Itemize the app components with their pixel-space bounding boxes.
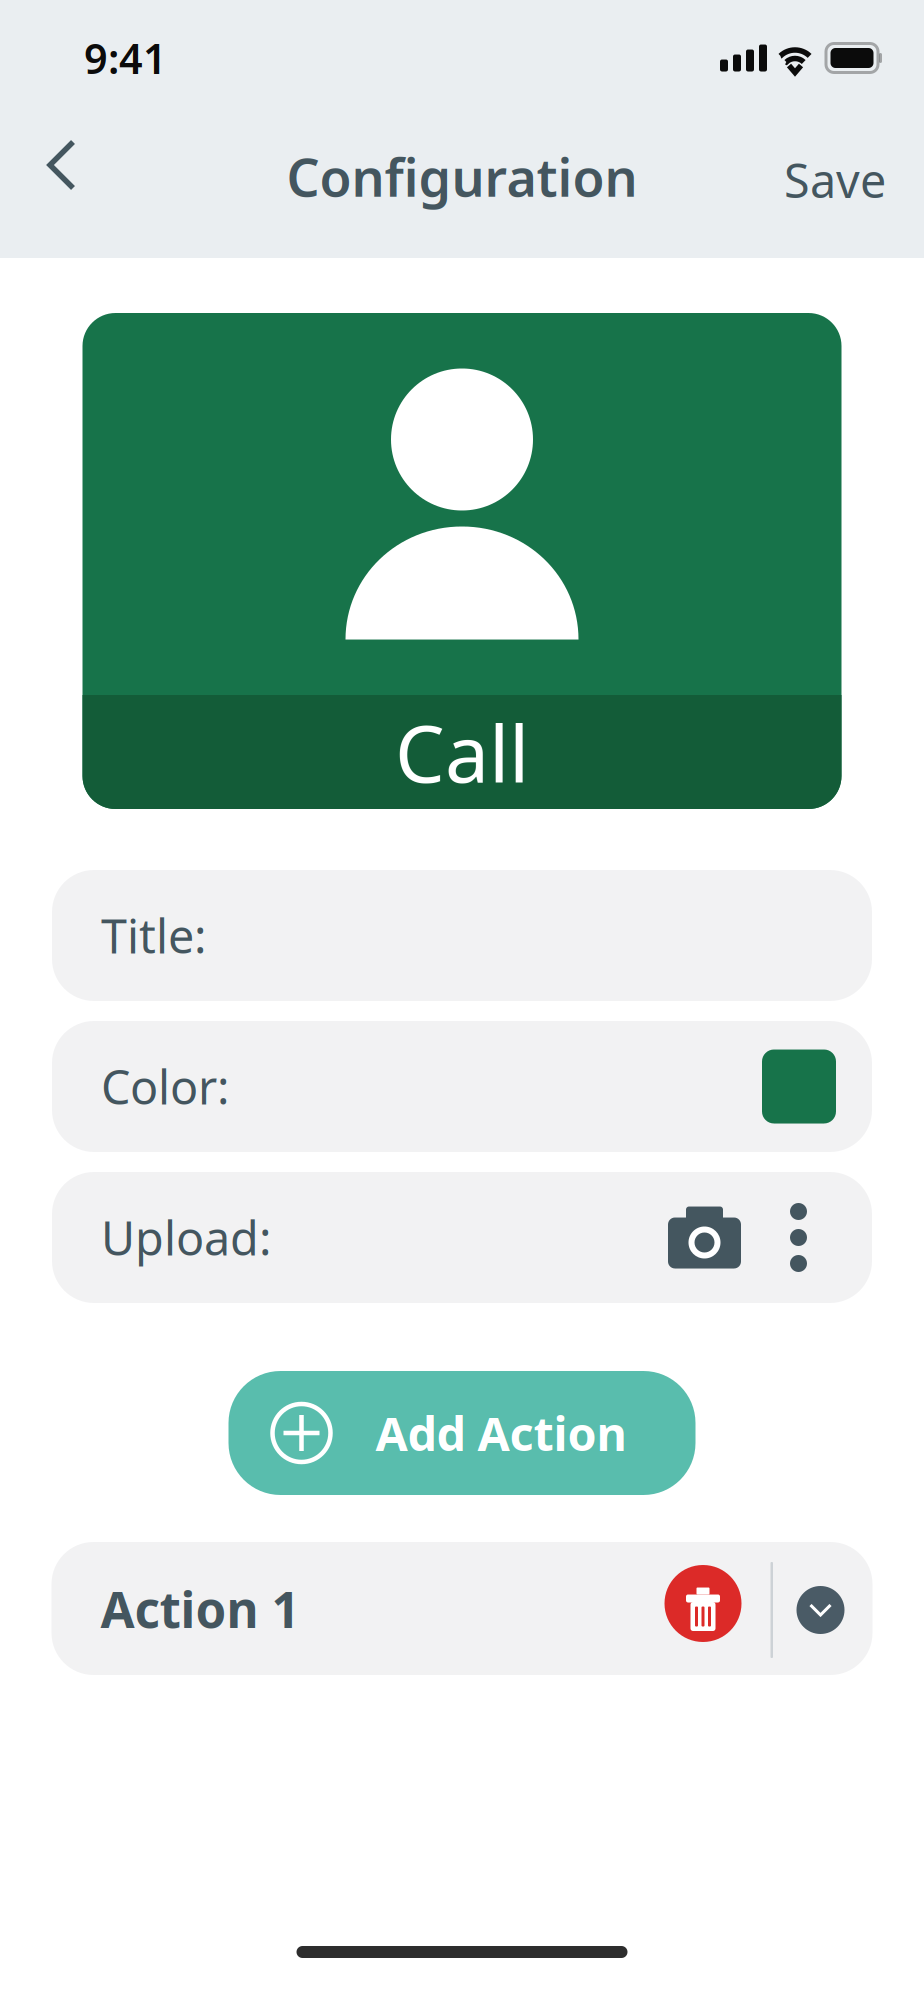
staticText: Add Action bbox=[375, 1402, 626, 1464]
staticText: Action 1 bbox=[100, 1576, 299, 1641]
staticText: Save bbox=[784, 149, 886, 211]
button[interactable]: Expand action bbox=[796, 1586, 844, 1634]
staticText: Call bbox=[395, 700, 529, 804]
button[interactable]: Delete action bbox=[664, 1565, 741, 1642]
staticText: Title: bbox=[101, 904, 207, 966]
staticText: Configuration bbox=[286, 142, 637, 211]
button[interactable]: Back bbox=[48, 125, 138, 205]
button[interactable]: Take photo bbox=[668, 1206, 741, 1268]
button[interactable]: Add Action bbox=[228, 1371, 695, 1495]
button[interactable]: Call bbox=[82, 313, 841, 809]
button[interactable]: Choose colour bbox=[762, 1049, 836, 1123]
staticText: Color: bbox=[101, 1055, 230, 1117]
staticText: 9:41 bbox=[84, 31, 167, 85]
staticText: Upload: bbox=[101, 1206, 272, 1268]
button[interactable]: Save bbox=[756, 140, 886, 220]
button[interactable]: More options bbox=[790, 1203, 807, 1272]
